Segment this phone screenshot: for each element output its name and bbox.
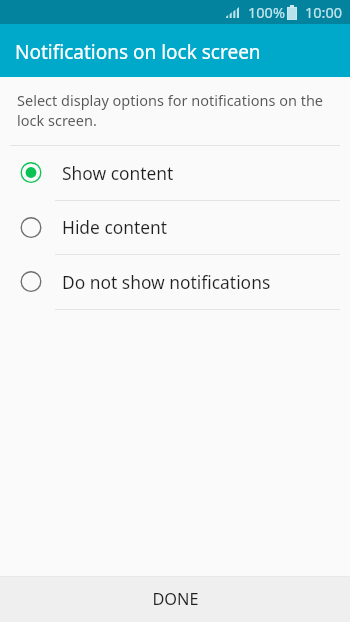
button[interactable]: Do not show notifications: [0, 255, 350, 309]
staticText: 100%: [248, 2, 285, 22]
staticText: Show content: [62, 161, 174, 185]
staticText: Hide content: [62, 215, 168, 239]
staticText: 10:00: [305, 2, 343, 22]
other: Battery full: [287, 5, 297, 20]
staticText: Do not show notifications: [62, 270, 271, 294]
staticText: Notifications on lock screen: [15, 39, 261, 65]
button[interactable]: Hide content: [0, 201, 350, 254]
staticText: DONE: [152, 588, 199, 610]
button[interactable]: DONE: [0, 577, 350, 622]
staticText: Select display options for notifications…: [17, 90, 329, 131]
other: Signal strength: [226, 6, 239, 18]
button[interactable]: Show content: [0, 146, 350, 200]
